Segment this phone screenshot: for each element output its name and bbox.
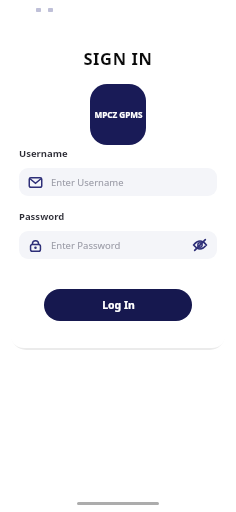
button[interactable]: Enter Username — [19, 168, 217, 196]
button[interactable]: Log In — [44, 289, 192, 321]
staticText: Password — [19, 210, 65, 223]
button[interactable]: Show password — [189, 234, 211, 256]
staticText: MPCZ GPMS — [94, 109, 143, 120]
staticText: SIGN IN — [83, 47, 153, 69]
staticText: Enter Username — [51, 176, 124, 189]
staticText: Log In — [102, 298, 135, 312]
staticText: Enter Password — [51, 239, 121, 252]
staticText: Username — [19, 147, 68, 160]
button[interactable]: Enter Password — [19, 231, 217, 259]
button[interactable]: MPCZ GPMS — [90, 84, 146, 145]
